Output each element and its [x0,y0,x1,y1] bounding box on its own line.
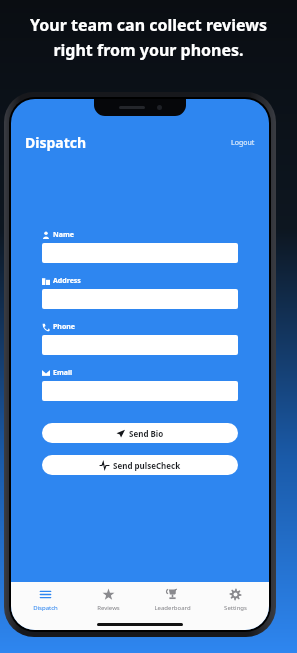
staticText: Send pulseCheck [113,460,181,471]
staticText: right from your phones. [53,39,244,61]
button[interactable] [42,335,238,355]
staticText: Leaderboard [154,604,191,612]
staticText: Your team can collect reviews [30,14,267,36]
staticText: Address [53,276,81,286]
staticText: Phone [53,322,76,332]
button[interactable] [42,381,238,401]
staticText: Dispatch [33,604,58,612]
staticText: Reviews [97,604,120,612]
button[interactable]: Dispatch [15,588,75,612]
staticText: Logout [231,138,255,148]
button[interactable]: Leaderboard [142,588,202,612]
staticText: Dispatch [25,133,87,152]
button[interactable]: Send Bio [42,423,238,443]
button[interactable] [42,243,238,263]
button[interactable]: Send pulseCheck [42,455,238,475]
staticText: Settings [224,604,247,612]
button[interactable] [42,289,238,309]
button[interactable]: Reviews [78,588,138,612]
staticText: Name [53,230,74,240]
button[interactable]: Logout [231,138,255,148]
button[interactable]: Settings [205,588,265,612]
staticText: Email [53,368,73,378]
staticText: Send Bio [129,428,164,439]
